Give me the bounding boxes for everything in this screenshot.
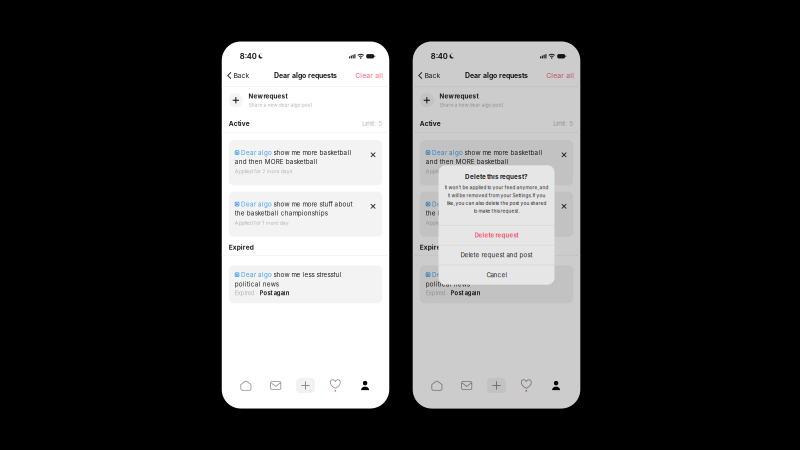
staticText: Applied bbox=[235, 168, 253, 174]
staticText: Share a new dear algo post bbox=[248, 102, 312, 108]
staticText: Dear algo requests bbox=[465, 71, 528, 80]
staticText: New request bbox=[248, 92, 287, 100]
staticText: 1 bbox=[262, 220, 264, 226]
staticText: the basketball championships bbox=[426, 209, 519, 217]
staticText: like, you can also delete the post you s… bbox=[446, 200, 546, 206]
button[interactable]: Cancel bbox=[438, 265, 554, 285]
staticText: Post bbox=[451, 290, 464, 297]
staticText: Dear algo bbox=[432, 200, 463, 208]
staticText: more bbox=[456, 220, 469, 226]
staticText: · bbox=[256, 290, 258, 297]
staticText: Expired bbox=[420, 243, 445, 251]
staticText: for bbox=[254, 220, 261, 226]
button[interactable]: Activity bbox=[320, 372, 350, 398]
button[interactable]: Messages bbox=[452, 372, 482, 398]
staticText: again bbox=[274, 290, 290, 297]
staticText: Dear algo bbox=[241, 271, 272, 278]
staticText: Delete this request? bbox=[465, 173, 528, 181]
button[interactable]: Clear all bbox=[350, 67, 389, 84]
staticText: Cancel bbox=[486, 271, 506, 279]
staticText: show me less stressful bbox=[465, 271, 533, 278]
staticText: Post bbox=[260, 290, 273, 297]
button[interactable]: New request bbox=[413, 86, 580, 114]
staticText: Dear algo bbox=[241, 149, 272, 156]
staticText: the basketball championships bbox=[235, 209, 328, 217]
staticText: Back bbox=[233, 71, 249, 80]
staticText: Clear all bbox=[355, 71, 383, 80]
staticText: day bbox=[280, 220, 289, 226]
staticText: more bbox=[265, 220, 278, 226]
staticText: 2 bbox=[262, 168, 265, 174]
button[interactable]: Remove request bbox=[368, 201, 378, 211]
staticText: New request bbox=[439, 92, 478, 100]
staticText: show me more basketball bbox=[465, 149, 543, 156]
staticText: Expired bbox=[235, 290, 255, 297]
button[interactable]: Profile bbox=[350, 372, 380, 398]
staticText: to make this request. bbox=[473, 208, 519, 214]
button[interactable]: Remove request bbox=[559, 150, 569, 160]
button[interactable]: Profile bbox=[541, 372, 571, 398]
staticText: and then MORE basketball bbox=[235, 158, 318, 165]
staticText: Clear all bbox=[546, 71, 574, 80]
staticText: show me more basketball bbox=[274, 149, 352, 156]
staticText: Expired bbox=[229, 243, 254, 251]
button[interactable]: Remove request bbox=[368, 150, 378, 160]
button[interactable]: Home bbox=[422, 372, 452, 398]
staticText: 8:40 bbox=[431, 52, 448, 61]
staticText: Active bbox=[229, 119, 250, 127]
button[interactable]: Messages bbox=[261, 372, 291, 398]
button[interactable]: Delete request bbox=[438, 225, 554, 245]
button[interactable]: Home bbox=[231, 372, 261, 398]
staticText: and then MORE basketball bbox=[426, 158, 509, 165]
button[interactable]: Activity bbox=[511, 372, 541, 398]
button[interactable]: Back bbox=[222, 67, 255, 84]
staticText: again bbox=[465, 290, 481, 297]
staticText: Expired bbox=[426, 290, 446, 297]
staticText: show me more stuff about bbox=[465, 200, 544, 208]
button[interactable]: Remove request bbox=[559, 201, 569, 211]
staticText: · bbox=[447, 290, 449, 297]
button[interactable]: New post bbox=[291, 372, 320, 398]
staticText: it will be removed from your Settings. I… bbox=[447, 193, 545, 198]
staticText: 1 bbox=[453, 220, 455, 226]
staticText: for bbox=[254, 168, 261, 174]
staticText: days bbox=[281, 168, 293, 174]
staticText: Delete request bbox=[474, 231, 518, 239]
staticText: day bbox=[471, 220, 480, 226]
staticText: Dear algo bbox=[432, 271, 463, 278]
staticText: Applied bbox=[426, 220, 444, 226]
button[interactable]: Clear all bbox=[541, 67, 580, 84]
staticText: political news bbox=[426, 280, 470, 288]
staticText: 8:40 bbox=[240, 52, 257, 61]
staticText: Limit: 5 bbox=[362, 120, 382, 127]
staticText: Dear algo requests bbox=[274, 71, 337, 80]
staticText: Dear algo bbox=[432, 149, 463, 156]
staticText: Share a new dear algo post bbox=[439, 102, 503, 108]
staticText: Active bbox=[420, 119, 441, 127]
staticText: Back bbox=[425, 71, 441, 80]
staticText: Limit: 5 bbox=[553, 120, 573, 127]
button[interactable]: Back bbox=[413, 67, 446, 84]
staticText: Delete request and post bbox=[460, 251, 532, 259]
button[interactable]: Delete request and post bbox=[438, 245, 554, 265]
staticText: Applied bbox=[235, 220, 253, 226]
staticText: for bbox=[445, 220, 452, 226]
staticText: show me less stressful bbox=[274, 271, 342, 278]
staticText: more bbox=[266, 168, 279, 174]
staticText: Applied bbox=[426, 168, 444, 174]
button[interactable]: New post bbox=[482, 372, 511, 398]
staticText: Dear algo bbox=[241, 200, 272, 208]
staticText: political news bbox=[235, 280, 279, 288]
staticText: It won't be applied to your feed anymore… bbox=[444, 185, 548, 190]
button[interactable]: New request bbox=[222, 86, 389, 114]
staticText: show me more stuff about bbox=[274, 200, 353, 208]
